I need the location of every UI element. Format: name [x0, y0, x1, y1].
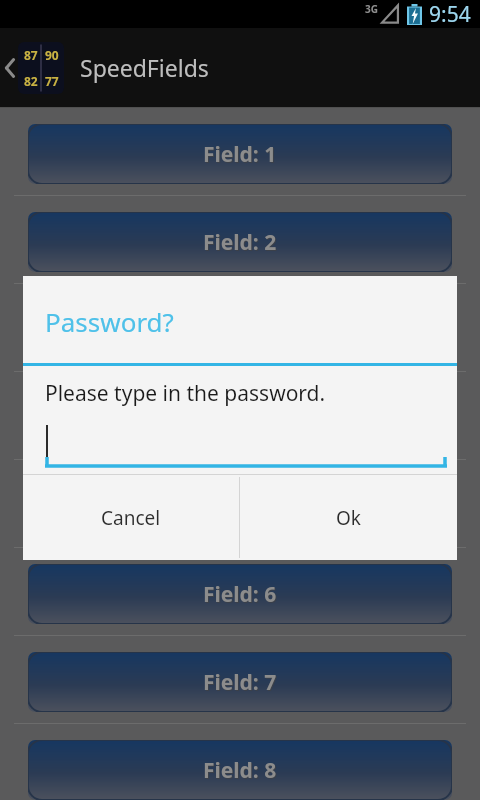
- button[interactable]: [45, 422, 447, 468]
- staticText: Field: 6: [203, 580, 277, 609]
- staticText: Field: 4: [204, 405, 278, 434]
- staticText: Field: 2: [203, 228, 277, 257]
- staticText: Field: 5: [203, 492, 277, 521]
- staticText: Cancel: [101, 505, 161, 531]
- button[interactable]: Cancel: [23, 475, 239, 560]
- button[interactable]: Field: 4: [28, 388, 452, 448]
- staticText: Field: 2: [204, 229, 278, 258]
- staticText: Field: 1: [203, 140, 277, 169]
- staticText: 82: [24, 73, 38, 89]
- staticText: SpeedFields: [80, 52, 209, 83]
- staticText: Ok: [336, 505, 361, 531]
- button[interactable]: Field: 8: [28, 740, 452, 800]
- staticText: Field: 8: [203, 756, 277, 785]
- button[interactable]: Field: 3: [28, 300, 452, 360]
- staticText: Password?: [45, 304, 174, 339]
- staticText: Field: 6: [204, 581, 278, 610]
- staticText: Field: 5: [204, 493, 278, 522]
- staticText: Field: 1: [204, 141, 278, 170]
- staticText: 90: [45, 47, 59, 63]
- button[interactable]: Field: 7: [28, 652, 452, 712]
- button[interactable]: Ok: [240, 475, 457, 560]
- staticText: 3G: [365, 2, 378, 16]
- staticText: 77: [45, 73, 59, 89]
- staticText: 87: [24, 47, 38, 63]
- button[interactable]: Field: 6: [28, 564, 452, 624]
- staticText: Field: 7: [203, 668, 277, 697]
- button[interactable]: Field: 2: [28, 212, 452, 272]
- staticText: Field: 7: [204, 669, 278, 698]
- staticText: 9:54: [429, 0, 471, 28]
- staticText: Field: 4: [203, 404, 277, 433]
- button[interactable]: Navigate up: [4, 28, 64, 107]
- staticText: Please type in the password.: [45, 379, 326, 408]
- button[interactable]: Field: 1: [28, 124, 452, 184]
- button[interactable]: Field: 5: [28, 476, 452, 536]
- staticText: Field: 8: [204, 757, 278, 786]
